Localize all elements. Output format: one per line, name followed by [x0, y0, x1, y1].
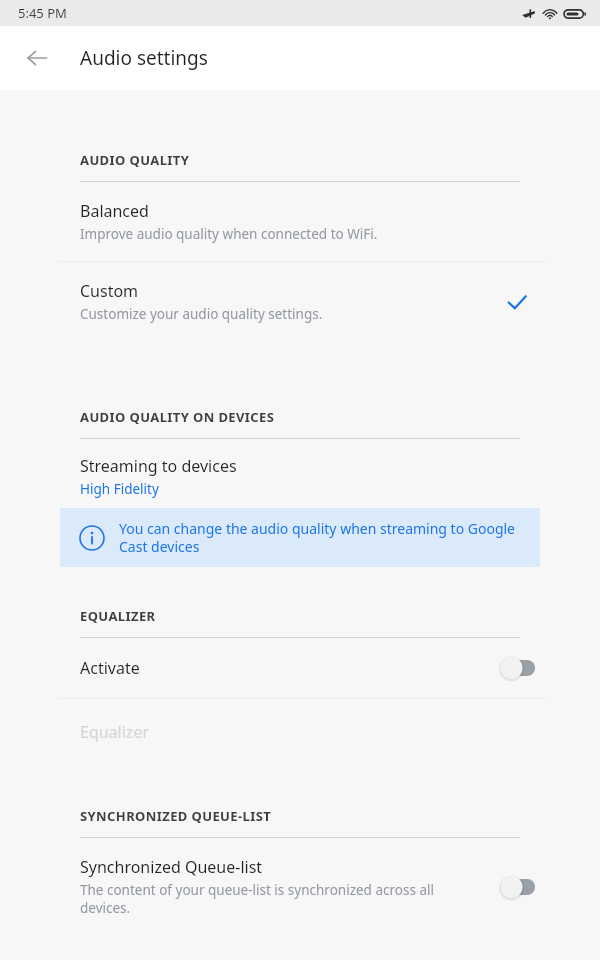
button[interactable]: Streaming to devices	[0, 439, 600, 508]
button[interactable]: Back	[13, 34, 61, 82]
staticText: The content of your queue-list is synchr…	[80, 881, 434, 917]
staticText: You can change the audio quality when st…	[119, 519, 516, 556]
button[interactable]: Activate	[0, 638, 600, 698]
staticText: AUDIO QUALITY	[80, 151, 190, 169]
button[interactable]: Toggle Synchronized Queue-list	[502, 875, 540, 899]
staticText: EQUALIZER	[80, 607, 156, 625]
staticText: Balanced	[80, 200, 149, 222]
staticText: Synchronized Queue-list	[80, 856, 263, 878]
button[interactable]: Balanced	[0, 182, 600, 261]
staticText: Activate	[80, 657, 140, 679]
staticText: Streaming to devices	[80, 455, 237, 477]
button[interactable]: Custom	[0, 262, 600, 341]
staticText: SYNCHRONIZED QUEUE-LIST	[80, 807, 272, 825]
staticText: Audio settings	[80, 45, 208, 71]
button[interactable]: Toggle Activate	[502, 656, 540, 680]
button[interactable]: Synchronized Queue-list	[0, 838, 600, 935]
staticText: Improve audio quality when connected to …	[80, 225, 378, 243]
staticText: Custom	[80, 280, 139, 302]
staticText: Equalizer	[80, 721, 150, 743]
staticText: AUDIO QUALITY ON DEVICES	[80, 408, 275, 426]
staticText: High Fidelity	[80, 480, 159, 498]
staticText: 5:45 PM	[18, 4, 67, 22]
button[interactable]: You can change the audio quality when st…	[60, 508, 540, 567]
staticText: Customize your audio quality settings.	[80, 305, 323, 323]
